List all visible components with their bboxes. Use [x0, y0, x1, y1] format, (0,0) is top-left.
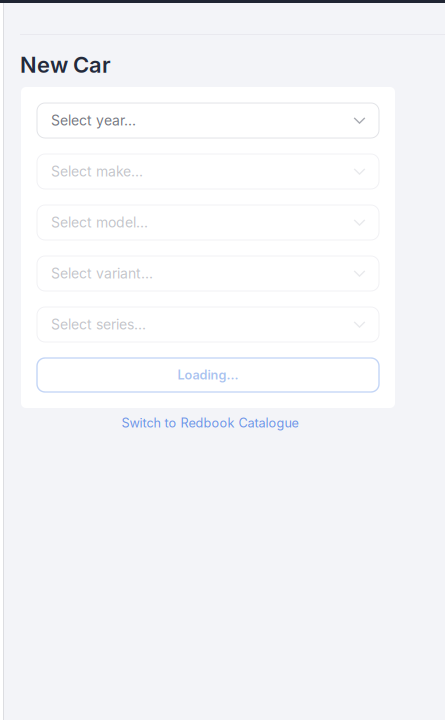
staticText: Select make...	[51, 163, 143, 180]
button[interactable]: Loading...	[37, 358, 379, 392]
staticText: Switch to Redbook Catalogue	[121, 415, 298, 431]
button[interactable]: Select model...	[37, 205, 379, 240]
staticText: Select series...	[51, 316, 146, 333]
staticText: New Car	[20, 51, 111, 78]
button[interactable]: Select year...	[37, 103, 379, 138]
button[interactable]: Select make...	[37, 154, 379, 189]
staticText: Select year...	[51, 112, 136, 129]
staticText: Select variant...	[51, 265, 153, 282]
staticText: Loading...	[177, 367, 238, 383]
button[interactable]: Switch to Redbook Catalogue	[23, 413, 397, 433]
staticText: Select model...	[51, 214, 148, 231]
button[interactable]: Select variant...	[37, 256, 379, 291]
button[interactable]: Select series...	[37, 307, 379, 342]
